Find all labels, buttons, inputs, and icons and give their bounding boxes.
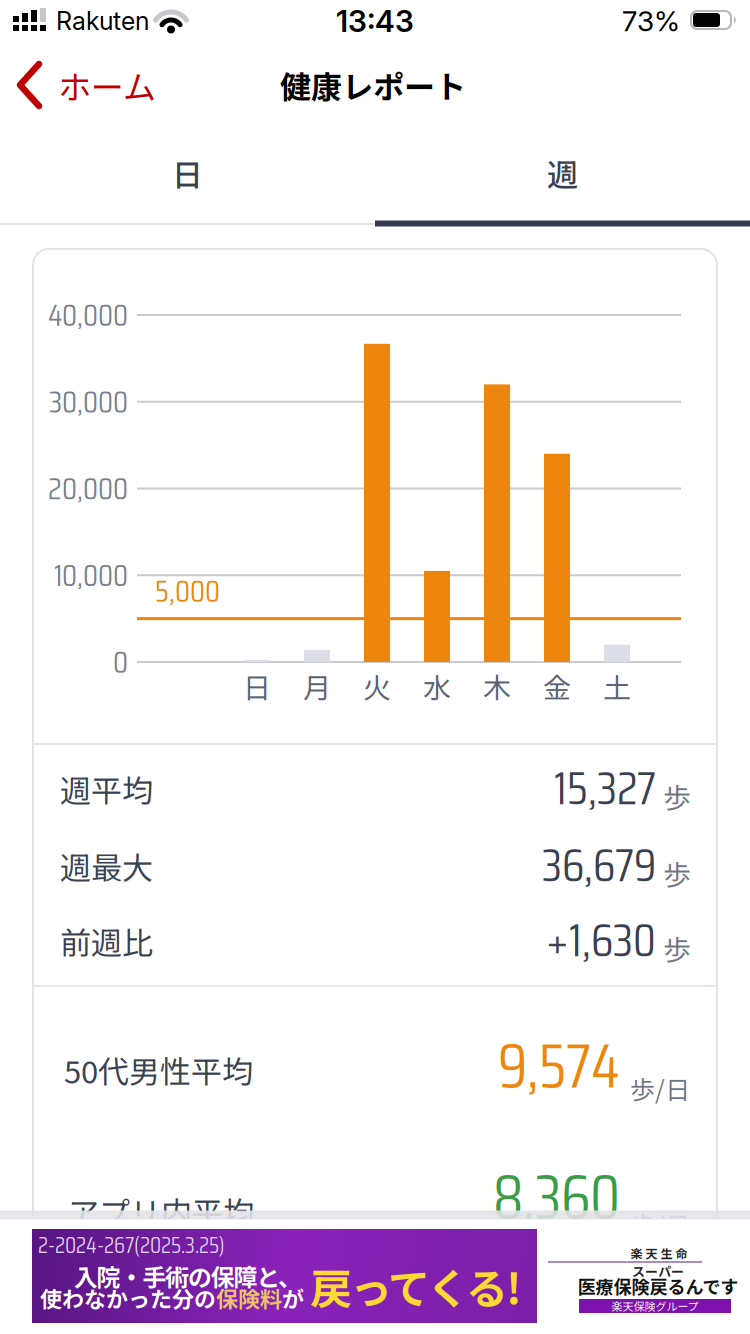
staticText: 8,360: [493, 1148, 620, 1246]
staticText: +1,630: [546, 903, 656, 977]
staticText: 5,000: [155, 567, 220, 615]
staticText: 日: [243, 666, 271, 706]
staticText: 歩: [663, 776, 691, 816]
staticText: Rakuten: [56, 6, 149, 36]
button[interactable]: 広告: [32, 1229, 718, 1323]
staticText: 楽天保険グループ: [611, 1298, 698, 1314]
staticText: 30,000: [49, 377, 128, 426]
staticText: 20,000: [48, 464, 128, 513]
button[interactable]: ホーム: [16, 53, 176, 117]
staticText: 戻ってくる!: [310, 1256, 522, 1316]
staticText: 73%: [622, 4, 680, 38]
staticText: 木: [483, 666, 511, 706]
staticText: 前週比: [60, 919, 153, 963]
staticText: 36,679: [542, 828, 656, 902]
staticText: 入院・手術の保障と、: [74, 1259, 302, 1293]
staticText: 9,574: [498, 1017, 620, 1115]
staticText: 使わなかった分の: [40, 1282, 216, 1314]
staticText: 歩: [663, 853, 691, 893]
staticText: 金: [543, 666, 571, 706]
button[interactable]: 日: [0, 130, 375, 226]
staticText: 0: [113, 638, 128, 686]
staticText: 週平均: [60, 767, 153, 811]
staticText: アプリ内平均: [68, 1189, 254, 1233]
staticText: 楽 天 生 命: [630, 1244, 687, 1262]
staticText: 日: [172, 151, 203, 195]
staticText: が: [282, 1282, 304, 1314]
staticText: 月: [303, 666, 331, 706]
staticText: スーパー: [632, 1262, 684, 1280]
staticText: 週最大: [60, 844, 153, 888]
staticText: 10,000: [54, 551, 128, 600]
staticText: 歩/日: [630, 1070, 690, 1106]
staticText: 13:43: [336, 3, 414, 39]
button[interactable]: 週: [375, 130, 750, 226]
staticText: 歩: [663, 928, 691, 968]
staticText: ホーム: [58, 61, 156, 109]
staticText: 歩/日: [630, 1206, 690, 1242]
staticText: 40,000: [48, 291, 128, 339]
staticText: 水: [423, 666, 451, 706]
staticText: 週: [547, 151, 578, 195]
staticText: 土: [603, 666, 631, 706]
staticText: 50代男性平均: [64, 1048, 253, 1092]
staticText: 火: [363, 666, 391, 706]
staticText: 15,327: [554, 751, 656, 825]
staticText: 保険料: [216, 1282, 282, 1314]
staticText: 2-2024-267(2025.3.25): [38, 1227, 225, 1263]
staticText: 健康レポート: [280, 63, 466, 107]
staticText: 医療保険戻るんです: [577, 1273, 738, 1299]
